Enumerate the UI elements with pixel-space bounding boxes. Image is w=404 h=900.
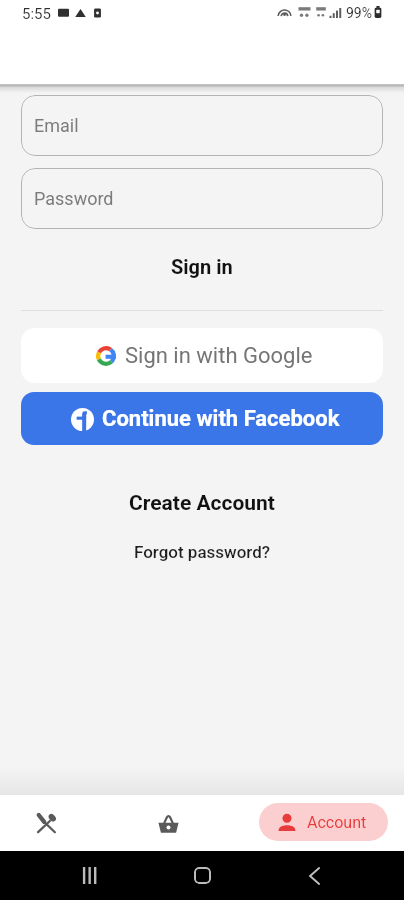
button[interactable]: Sign in	[0, 245, 404, 287]
button[interactable]: Basket	[138, 795, 198, 851]
staticText: Account	[307, 813, 367, 832]
button[interactable]: Forgot password?	[0, 539, 404, 565]
button[interactable]: Back	[282, 851, 346, 900]
staticText: Create Account	[129, 491, 275, 516]
button[interactable]: Recents	[57, 851, 121, 900]
staticText: Sign in with Google	[125, 343, 313, 369]
button[interactable]: Create Account	[0, 487, 404, 519]
button[interactable]: Account	[259, 803, 388, 841]
staticText: 99%	[346, 5, 372, 21]
button[interactable]: Continue with Facebook	[21, 392, 383, 445]
button[interactable]: Home	[170, 851, 234, 900]
staticText: Password	[34, 188, 114, 209]
button[interactable]: Email	[21, 95, 383, 156]
staticText: Continue with Facebook	[102, 406, 340, 432]
staticText: 5:55	[22, 5, 51, 23]
staticText: Email	[34, 115, 79, 136]
staticText: Forgot password?	[134, 542, 271, 562]
staticText: Sign in	[171, 255, 233, 278]
button[interactable]: Restaurant	[0, 795, 92, 851]
button[interactable]: Password	[21, 168, 383, 229]
button[interactable]: Sign in with Google	[21, 328, 383, 383]
